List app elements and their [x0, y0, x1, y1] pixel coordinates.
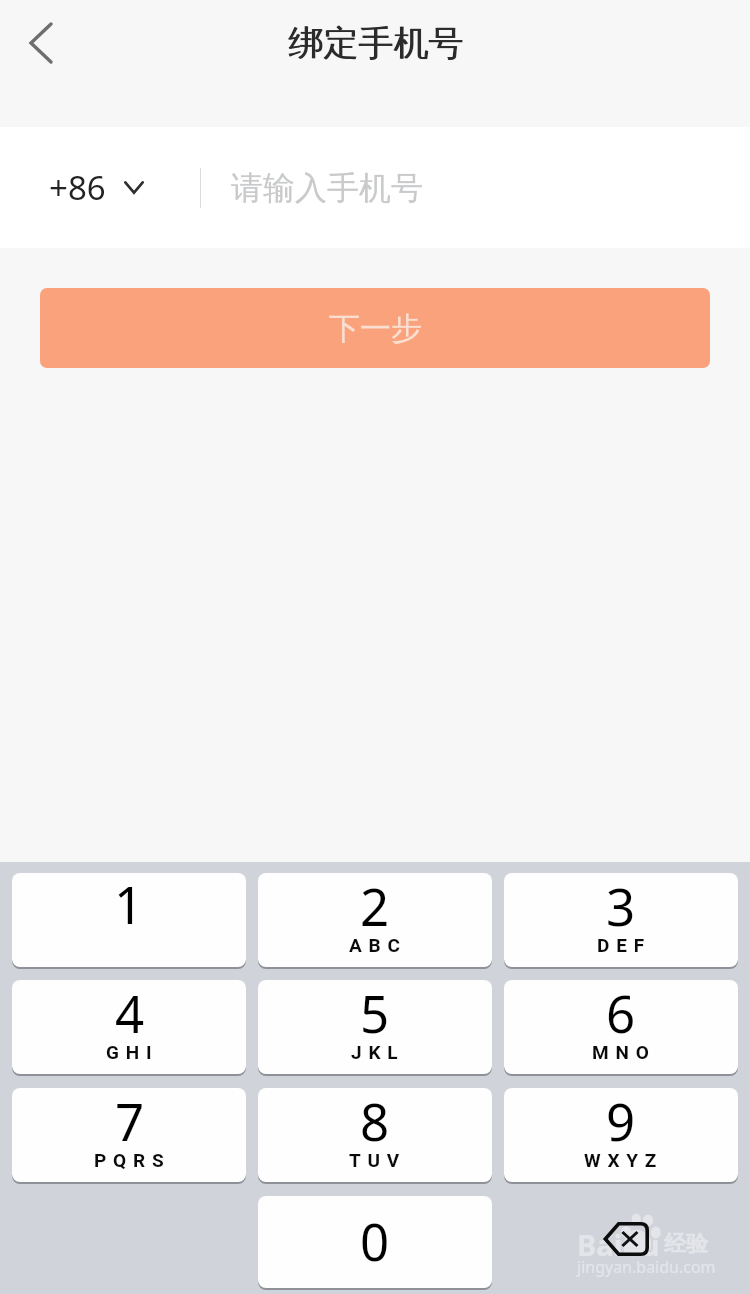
staticText: 绑定手机号 — [288, 21, 463, 65]
button[interactable]: 2 — [258, 873, 492, 967]
staticText: 1 — [114, 873, 144, 938]
staticText: 8 — [360, 1088, 390, 1155]
staticText: PQRS — [94, 1149, 171, 1171]
staticText: Baidu — [577, 1225, 660, 1264]
staticText: MNO — [592, 1041, 656, 1063]
button[interactable]: 6 — [504, 980, 738, 1074]
staticText: 6 — [606, 980, 636, 1047]
staticText: GHI — [106, 1041, 159, 1063]
staticText: jingyan.baidu.com — [577, 1256, 716, 1278]
staticText: TUV — [349, 1149, 407, 1171]
staticText: DEF — [597, 934, 651, 956]
staticText: ABC — [349, 934, 407, 956]
staticText: +86 — [49, 165, 106, 210]
staticText: 绑定手机号 — [289, 21, 464, 65]
button[interactable]: 下一步 — [40, 288, 710, 368]
staticText: JKL — [351, 1041, 405, 1063]
button[interactable]: 4 — [12, 980, 246, 1074]
staticText: 下一步 — [329, 309, 422, 348]
staticText: 7 — [115, 1088, 145, 1155]
button[interactable]: 7 — [12, 1088, 246, 1182]
staticText: 5 — [360, 980, 390, 1047]
staticText: 4 — [115, 980, 145, 1047]
staticText: 9 — [606, 1088, 636, 1155]
staticText: 0 — [360, 1206, 390, 1275]
staticText: 3 — [606, 873, 636, 940]
button[interactable]: 9 — [504, 1088, 738, 1182]
staticText: 2 — [360, 873, 390, 940]
staticText: 经验 — [664, 1230, 708, 1258]
button[interactable]: +86 — [37, 151, 156, 224]
button[interactable]: 3 — [504, 873, 738, 967]
button[interactable]: 1 — [12, 873, 246, 967]
staticText: WXYZ — [584, 1149, 664, 1171]
staticText: 请输入手机号 — [231, 168, 423, 208]
button[interactable]: 0 — [258, 1196, 492, 1288]
button[interactable]: 8 — [258, 1088, 492, 1182]
button[interactable]: 5 — [258, 980, 492, 1074]
button[interactable]: Back — [11, 13, 71, 73]
button[interactable]: Backspace — [504, 1192, 738, 1286]
